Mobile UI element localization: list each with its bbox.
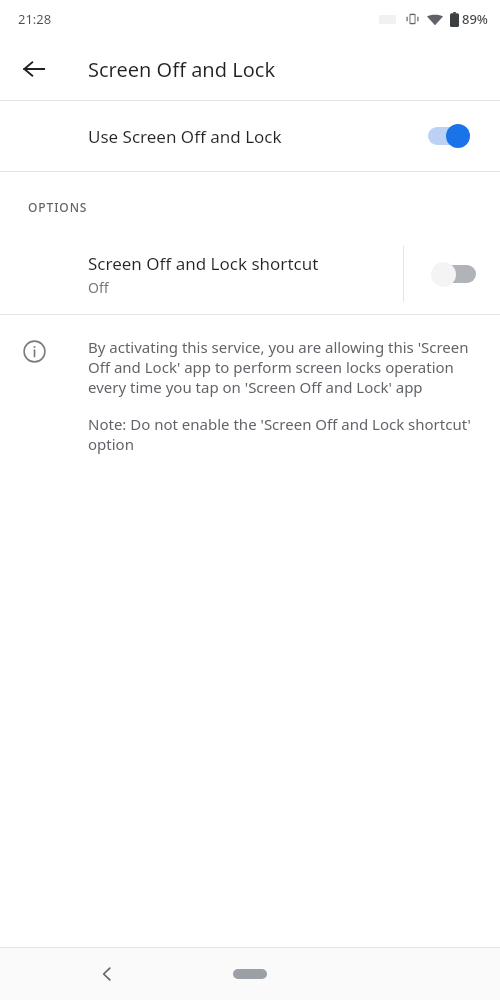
button[interactable]: Back <box>10 45 58 93</box>
staticText: Note: Do not enable the 'Screen Off and … <box>88 414 472 454</box>
button[interactable]: Home <box>220 959 280 989</box>
staticText: 89% <box>462 10 488 28</box>
staticText: Screen Off and Lock shortcut <box>88 252 319 275</box>
button[interactable]: Use Screen Off and Lock <box>0 101 500 171</box>
staticText: 21:28 <box>18 10 52 28</box>
staticText: OPTIONS <box>28 199 88 215</box>
staticText: By activating this service, you are allo… <box>88 337 472 397</box>
button[interactable]: Screen Off and Lock shortcut <box>0 234 403 314</box>
button[interactable]: Back <box>84 951 130 997</box>
staticText: Off <box>88 278 109 297</box>
staticText: Screen Off and Lock <box>88 56 276 83</box>
staticText: Use Screen Off and Lock <box>88 125 426 148</box>
button[interactable]: Toggle shortcut <box>404 234 500 314</box>
